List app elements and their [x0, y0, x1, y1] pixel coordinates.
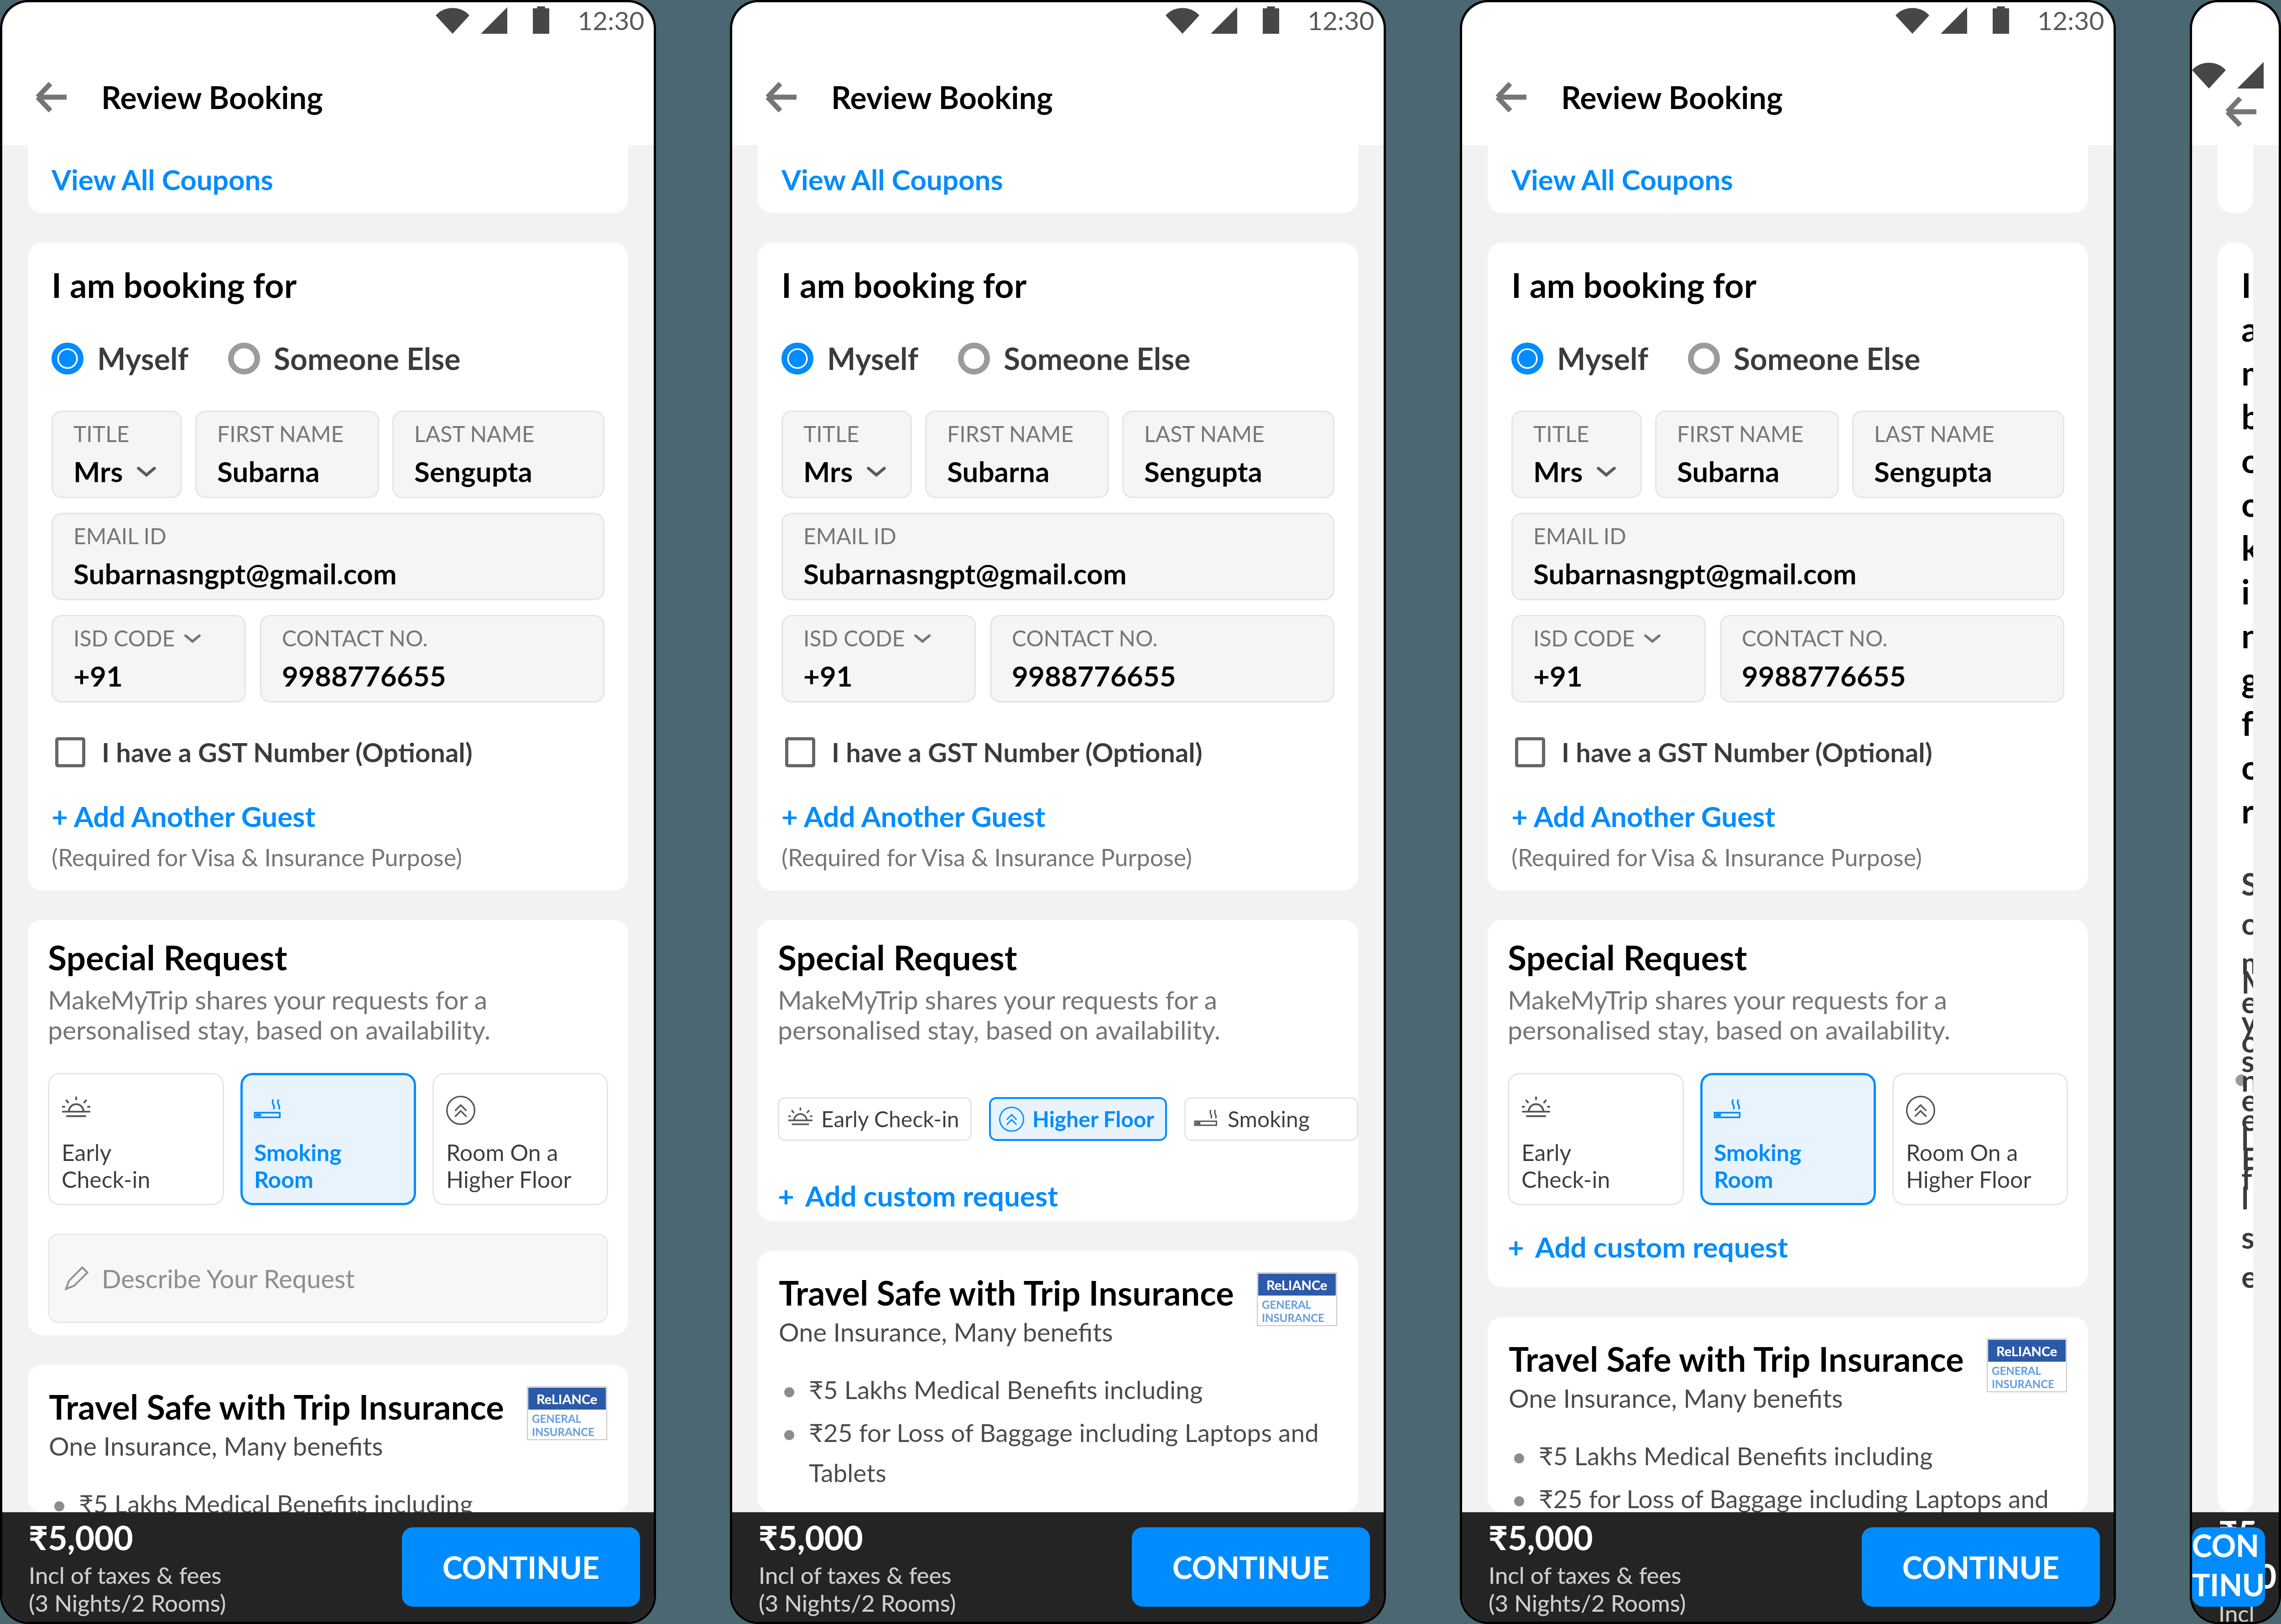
staticText: Incl of taxes & fees — [29, 1561, 222, 1589]
button[interactable]: Back — [2223, 94, 2259, 130]
button[interactable]: CONTINUE — [1132, 1527, 1370, 1607]
staticText: Mrs — [803, 454, 853, 488]
staticText: ₹25 for Loss of Baggage including Laptop… — [809, 1417, 1319, 1488]
button[interactable]: Someone Else — [958, 340, 1191, 376]
staticText: Smoking Room — [1228, 1106, 1346, 1132]
staticText: CONTACT NO. — [1012, 625, 1158, 651]
button[interactable]: Travel Safe with Trip Insurance — [758, 1251, 1358, 1512]
button[interactable]: Back — [763, 79, 799, 115]
button[interactable]: LAST NAME — [1122, 411, 1334, 498]
button[interactable]: CONTACT NO. — [990, 615, 1334, 703]
button[interactable]: CONTINUE — [402, 1527, 640, 1607]
button[interactable]: CONTINUE — [1862, 1527, 2100, 1607]
staticText: (Required for Visa & Insurance Purpose) — [781, 843, 1192, 871]
staticText: Review Booking — [1561, 78, 1783, 116]
staticText: Sengupta — [414, 454, 533, 488]
button[interactable]: Myself — [1511, 340, 1649, 376]
staticText: Travel Safe with Trip Insurance — [779, 1272, 1234, 1313]
staticText: TITLE — [803, 421, 859, 447]
button[interactable]: Back — [33, 79, 69, 115]
button[interactable]: I have a GST Number (Optional) — [785, 736, 1203, 768]
button[interactable]: + Add Another Guest — [781, 799, 1046, 833]
staticText: Early Check-in — [1521, 1139, 1610, 1192]
staticText: One Insurance, Many benefits — [779, 1317, 1113, 1347]
staticText: I am booking for — [1511, 265, 1757, 305]
staticText: CONTACT NO. — [282, 625, 428, 651]
staticText: Sengupta — [1144, 454, 1263, 488]
button[interactable]: Myself — [781, 340, 919, 376]
button[interactable]: + — [1508, 1230, 1788, 1264]
button[interactable]: I have a GST Number (Optional) — [55, 736, 473, 768]
button[interactable]: View All Coupons — [28, 145, 628, 213]
button[interactable]: ISD CODE — [52, 615, 246, 703]
button[interactable]: EMAIL ID — [781, 513, 1334, 600]
staticText: One Insurance, Many benefits — [1509, 1383, 1843, 1413]
button[interactable]: Early Check-in — [1508, 1073, 1684, 1205]
button[interactable]: Someone Else — [1688, 340, 1921, 376]
button[interactable]: TITLE — [52, 411, 182, 498]
staticText: GENERAL — [532, 1412, 582, 1425]
staticText: I have a GST Number (Optional) — [832, 736, 1203, 768]
staticText: MakeMyTrip shares your requests for a pe… — [48, 984, 491, 1045]
button[interactable]: CONTINUE — [2192, 1527, 2265, 1607]
staticText: 12:30 — [1307, 5, 1375, 36]
button[interactable]: CONTACT NO. — [1720, 615, 2064, 703]
staticText: Smoking Room — [1714, 1139, 1802, 1192]
button[interactable]: View All Coupons — [758, 145, 1358, 213]
button[interactable]: TITLE — [781, 411, 912, 498]
staticText: Higher Floor — [1032, 1106, 1155, 1132]
staticText: ₹5,000 — [759, 1517, 863, 1557]
button[interactable]: Early Check-in — [48, 1073, 224, 1205]
button[interactable]: Someone Else — [228, 340, 461, 376]
button[interactable]: FIRST NAME — [195, 411, 379, 498]
button[interactable]: Describe Your Request — [48, 1234, 608, 1323]
button[interactable]: Smoking Room — [1184, 1097, 1358, 1141]
staticText: EMAIL ID — [803, 523, 896, 549]
staticText: INSURANCE — [1992, 1377, 2054, 1390]
button[interactable]: ISD CODE — [1511, 615, 1706, 703]
button[interactable]: Smoking Room — [240, 1073, 416, 1205]
button[interactable]: LAST NAME — [392, 411, 604, 498]
staticText: Travel Safe with Trip Insurance — [1509, 1338, 1964, 1379]
staticText: Incl of taxes & fees — [1489, 1561, 1682, 1589]
button[interactable]: ISD CODE — [781, 615, 976, 703]
staticText: INSURANCE — [1262, 1311, 1324, 1324]
staticText: CONTINUE — [1902, 1549, 2059, 1585]
button[interactable]: + Add Another Guest — [1511, 799, 1776, 833]
button[interactable]: EMAIL ID — [1511, 513, 2064, 600]
button[interactable]: Back — [1493, 79, 1529, 115]
button[interactable]: TITLE — [1511, 411, 1642, 498]
button[interactable]: Myself — [52, 340, 189, 376]
button[interactable]: Early Check-in — [778, 1097, 972, 1141]
staticText: 9988776655 — [1012, 659, 1176, 692]
staticText: Review Booking — [831, 78, 1053, 116]
button[interactable]: FIRST NAME — [1655, 411, 1839, 498]
staticText: ₹5,000 — [1489, 1517, 1593, 1557]
button[interactable]: Smoking Room — [1700, 1073, 1876, 1205]
staticText: I am booking for — [781, 265, 1027, 305]
button[interactable]: CONTACT NO. — [260, 615, 604, 703]
button[interactable]: LAST NAME — [1852, 411, 2064, 498]
staticText: I have a GST Number (Optional) — [1562, 736, 1932, 768]
button[interactable]: + — [778, 1179, 1058, 1213]
button[interactable]: + Add Another Guest — [52, 799, 316, 833]
button[interactable]: FIRST NAME — [925, 411, 1109, 498]
button[interactable]: Travel Safe with Trip Insurance — [1488, 1317, 2088, 1512]
staticText: Incl of taxes & fees — [759, 1561, 952, 1589]
button[interactable]: I have a GST Number (Optional) — [1515, 736, 1932, 768]
staticText: +91 — [73, 659, 123, 692]
button[interactable]: EMAIL ID — [52, 513, 604, 600]
button[interactable]: Room On a Higher Floor — [432, 1073, 608, 1205]
staticText: View All Coupons — [781, 162, 1003, 196]
staticText: Early Check-in — [62, 1139, 151, 1192]
staticText: ₹5 Lakhs Medical Benefits including — [809, 1374, 1203, 1405]
staticText: LAST NAME — [1144, 421, 1265, 447]
button[interactable]: View All Coupons — [1488, 145, 2088, 213]
button[interactable]: Higher Floor — [989, 1097, 1167, 1141]
staticText: + — [778, 1179, 794, 1213]
staticText: INSURANCE — [532, 1425, 594, 1438]
button[interactable]: Room On a Higher Floor — [1892, 1073, 2068, 1205]
staticText: ₹5,000 — [2219, 1512, 2279, 1596]
button[interactable]: Travel Safe with Trip Insurance — [28, 1365, 628, 1512]
